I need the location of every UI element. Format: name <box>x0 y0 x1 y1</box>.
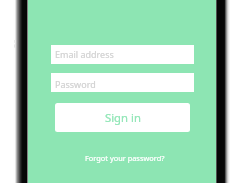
staticText: Email address <box>55 48 114 60</box>
staticText: Password <box>55 78 96 90</box>
button[interactable]: Sign in <box>55 103 190 132</box>
button[interactable]: Forgot your password? <box>85 153 165 163</box>
staticText: Sign in <box>105 110 141 125</box>
button[interactable]: Password <box>51 73 194 92</box>
button[interactable]: Email address <box>51 45 194 64</box>
